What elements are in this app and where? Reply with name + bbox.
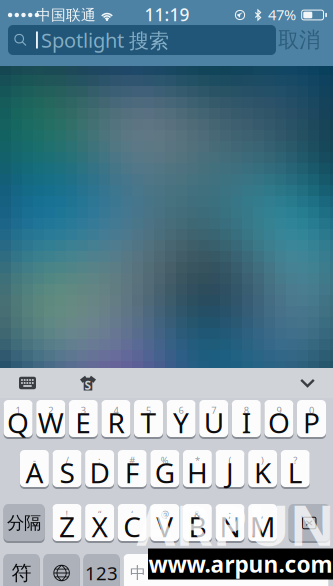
button[interactable]: Space — [124, 554, 329, 586]
button[interactable]: * — [183, 450, 212, 490]
staticText: C — [123, 508, 141, 545]
staticText: ! — [65, 508, 68, 520]
staticText: 8 — [244, 404, 249, 416]
staticText: 5 — [146, 404, 151, 416]
staticText: B — [188, 508, 206, 545]
staticText: @ — [161, 508, 169, 520]
staticText: - — [33, 454, 36, 466]
button[interactable]: Delete — [289, 504, 330, 544]
staticText: 123 — [85, 561, 118, 585]
staticText: ARPUN — [136, 487, 333, 561]
staticText: 6 — [179, 404, 184, 416]
button[interactable]: ( — [215, 450, 244, 490]
staticText: W — [38, 404, 64, 441]
button[interactable]: : — [85, 450, 114, 490]
staticText: L — [288, 454, 303, 491]
staticText: “ — [98, 508, 101, 520]
button[interactable]: ‘ — [118, 504, 147, 544]
button[interactable]: 0 — [297, 400, 326, 440]
button[interactable]: ! — [52, 504, 81, 544]
button[interactable]: 9 — [264, 400, 293, 440]
staticText: 中 — [130, 563, 146, 583]
button[interactable]: Hide keyboard — [300, 379, 315, 387]
staticText: ( — [228, 454, 231, 466]
button[interactable]: 7 — [199, 400, 228, 440]
staticText: ) — [261, 454, 264, 466]
button[interactable]: % — [150, 450, 179, 490]
staticText: 9 — [276, 404, 281, 416]
staticText: P — [303, 404, 320, 441]
button[interactable]: ; — [215, 504, 244, 544]
button[interactable]: Separator — [4, 504, 45, 544]
button[interactable]: 取消 — [278, 27, 333, 53]
staticText: 7 — [211, 404, 216, 416]
staticText: F — [125, 454, 140, 491]
button[interactable]: 5 — [134, 400, 163, 440]
button[interactable]: & — [183, 504, 212, 544]
button[interactable]: Next keyboard — [44, 554, 80, 586]
staticText: # — [129, 454, 135, 466]
staticText: O — [268, 404, 290, 441]
staticText: Q — [7, 404, 29, 441]
staticText: I — [242, 404, 251, 441]
staticText: D — [90, 454, 110, 491]
staticText: A — [25, 454, 43, 491]
staticText: : — [98, 454, 101, 466]
staticText: T — [140, 404, 156, 441]
staticText: 4 — [113, 404, 118, 416]
staticText: U — [204, 404, 224, 441]
button[interactable]: # — [118, 450, 147, 490]
staticText: 47% — [268, 5, 296, 24]
staticText: E — [75, 404, 91, 441]
staticText: 0 — [309, 404, 314, 416]
staticText: K — [254, 454, 271, 491]
button[interactable]: Keyboard theme — [80, 375, 96, 390]
staticText: & — [194, 508, 201, 520]
staticText: 分隔 — [7, 512, 41, 534]
staticText: 符 — [12, 561, 32, 585]
button[interactable]: 8 — [232, 400, 261, 440]
staticText: 中国联通 — [36, 6, 96, 24]
button[interactable]: 3 — [69, 400, 98, 440]
staticText: * — [195, 454, 200, 466]
button[interactable]: 6 — [167, 400, 196, 440]
staticText: www.arpun.com — [148, 549, 332, 579]
staticText: M — [250, 508, 275, 545]
button[interactable]: Spotlight 搜索 — [8, 25, 276, 55]
staticText: N — [219, 508, 240, 545]
staticText: Spotlight 搜索 — [41, 27, 169, 53]
staticText: S — [59, 454, 74, 491]
button[interactable]: @ — [150, 504, 179, 544]
button[interactable]: ? — [281, 450, 310, 490]
button[interactable]: Symbols — [4, 554, 40, 586]
staticText: 11:19 — [144, 3, 189, 26]
button[interactable]: “ — [85, 504, 114, 544]
staticText: H — [187, 454, 208, 491]
staticText: Z — [59, 508, 75, 545]
staticText: 2 — [48, 404, 53, 416]
staticText: ? — [293, 454, 297, 466]
staticText: 1 — [16, 404, 21, 416]
button[interactable]: ) — [248, 450, 277, 490]
staticText: / — [65, 454, 68, 466]
staticText: G — [155, 454, 175, 491]
button[interactable]: 4 — [101, 400, 130, 440]
button[interactable]: - — [20, 450, 49, 490]
button[interactable]: 1 — [4, 400, 33, 440]
staticText: Y — [173, 404, 189, 441]
staticText: X — [92, 508, 108, 545]
staticText: S — [84, 377, 91, 393]
button[interactable]: Keyboard settings — [19, 377, 36, 389]
staticText: J — [226, 454, 234, 491]
button[interactable]: , — [248, 504, 277, 544]
staticText: 3 — [81, 404, 86, 416]
staticText: , — [261, 508, 264, 520]
button[interactable]: Numbers — [84, 554, 120, 586]
button[interactable]: / — [52, 450, 81, 490]
button[interactable]: 2 — [36, 400, 65, 440]
staticText: V — [156, 508, 173, 545]
staticText: R — [107, 404, 124, 441]
staticText: ‘ — [131, 508, 133, 520]
staticText: % — [161, 454, 169, 466]
staticText: ; — [228, 508, 231, 520]
